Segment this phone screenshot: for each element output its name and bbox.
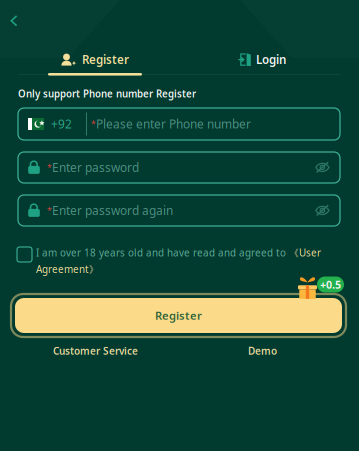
staticText: Register xyxy=(82,52,129,67)
staticText: Login xyxy=(256,52,286,67)
staticText: 《User xyxy=(289,246,321,259)
button[interactable]: Register xyxy=(48,52,142,76)
staticText: Customer Service xyxy=(53,344,138,358)
button[interactable]: I am over 18 years old and have read and… xyxy=(17,246,342,276)
staticText: Register xyxy=(155,308,202,323)
staticText: I am over 18 years old and have read and… xyxy=(36,246,289,259)
staticText: Enter password xyxy=(52,159,139,176)
staticText: +0.5 xyxy=(320,277,341,292)
staticText: Demo xyxy=(248,344,277,358)
button[interactable]: Login xyxy=(232,52,292,67)
staticText: Only support Phone number Register xyxy=(18,87,196,100)
button[interactable]: Back xyxy=(10,15,30,39)
staticText: * xyxy=(47,205,52,216)
staticText: Please enter Phone number xyxy=(96,116,251,132)
staticText: Enter password again xyxy=(52,202,173,219)
staticText: +92 xyxy=(51,116,72,132)
staticText: * xyxy=(47,162,52,173)
button[interactable]: Customer Service xyxy=(53,344,138,358)
button[interactable]: Register xyxy=(11,294,346,337)
button[interactable]: Demo xyxy=(248,344,277,358)
staticText: Agreement》 xyxy=(36,262,99,276)
staticText: * xyxy=(91,118,96,130)
